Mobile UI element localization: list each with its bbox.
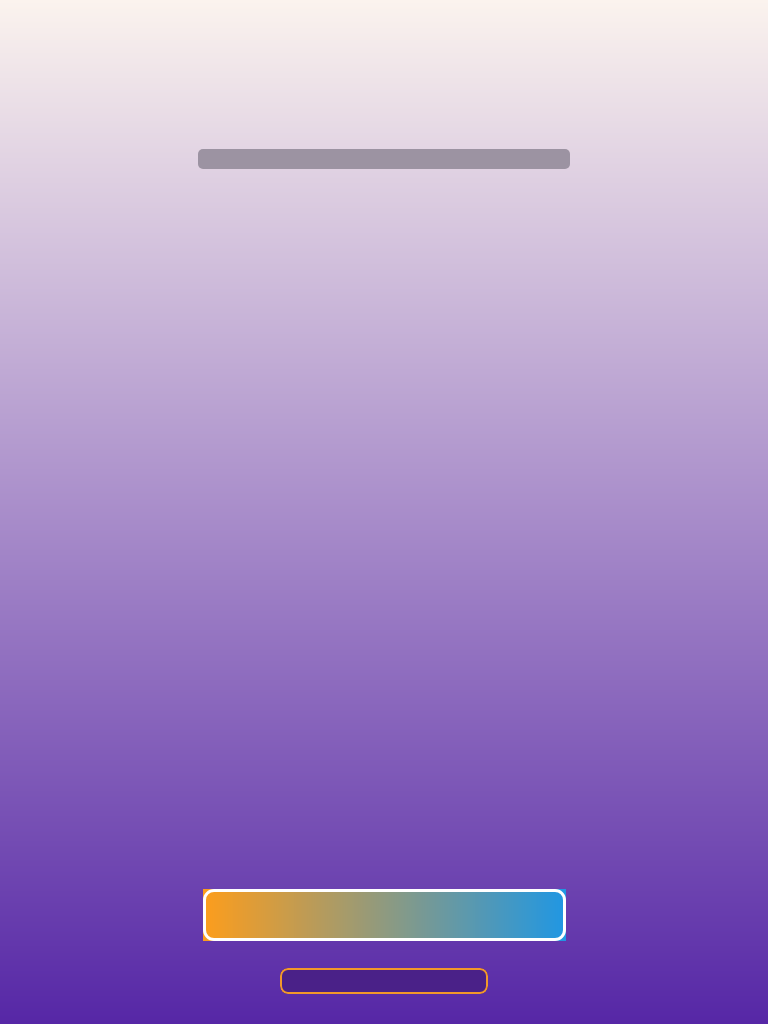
- button[interactable]: Skip: [280, 968, 488, 994]
- button[interactable]: Headline: [198, 149, 570, 169]
- button[interactable]: Get started: [203, 889, 566, 941]
